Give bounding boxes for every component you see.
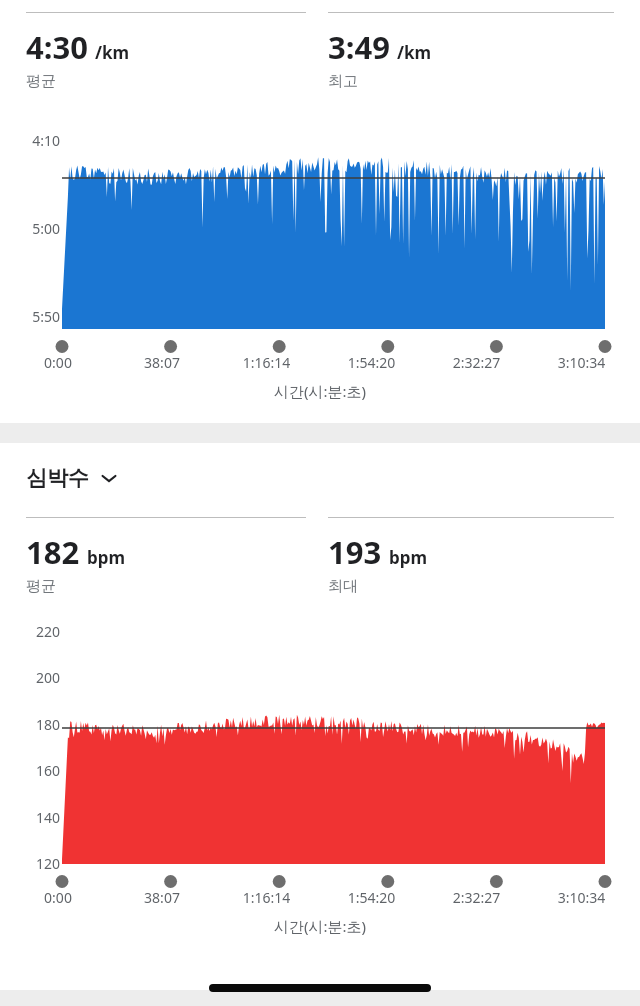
staticText: 1:54:20 <box>319 888 424 907</box>
staticText: 38:07 <box>110 888 214 907</box>
staticText: bpm <box>389 546 428 569</box>
staticText: 5:00 <box>20 219 60 238</box>
button[interactable]: 심박수 <box>26 465 119 491</box>
staticText: 시간(시:분:초) <box>0 381 640 401</box>
staticText: 3:10:34 <box>529 888 634 907</box>
button[interactable]: 4:30 <box>26 12 306 91</box>
staticText: 1:16:14 <box>214 353 319 372</box>
staticText: 평균 <box>26 577 56 596</box>
staticText: 3:10:34 <box>529 353 634 372</box>
staticText: 4:10 <box>20 131 60 150</box>
staticText: 120 <box>20 854 60 873</box>
staticText: 시간(시:분:초) <box>0 916 640 936</box>
button[interactable]: 193 <box>328 517 614 596</box>
staticText: 200 <box>20 668 60 687</box>
staticText: 심박수 <box>26 465 89 491</box>
staticText: /km <box>397 41 432 64</box>
staticText: 160 <box>20 761 60 780</box>
staticText: 1:16:14 <box>214 888 319 907</box>
staticText: 5:50 <box>20 307 60 326</box>
staticText: 193 <box>328 531 382 573</box>
staticText: 2:32:27 <box>424 888 529 907</box>
staticText: 182 <box>26 531 80 573</box>
staticText: 0:00 <box>6 888 110 907</box>
staticText: 140 <box>20 808 60 827</box>
staticText: 2:32:27 <box>424 353 529 372</box>
staticText: 180 <box>20 715 60 734</box>
staticText: 최대 <box>328 577 358 596</box>
staticText: bpm <box>87 546 126 569</box>
staticText: 220 <box>20 622 60 641</box>
staticText: 3:49 <box>328 26 390 68</box>
staticText: 4:30 <box>26 26 88 68</box>
staticText: 최고 <box>328 72 358 91</box>
staticText: 평균 <box>26 72 56 91</box>
staticText: 38:07 <box>110 353 214 372</box>
button[interactable]: 3:49 <box>328 12 614 91</box>
staticText: 1:54:20 <box>319 353 424 372</box>
button[interactable]: 182 <box>26 517 306 596</box>
staticText: /km <box>95 41 130 64</box>
staticText: 0:00 <box>6 353 110 372</box>
